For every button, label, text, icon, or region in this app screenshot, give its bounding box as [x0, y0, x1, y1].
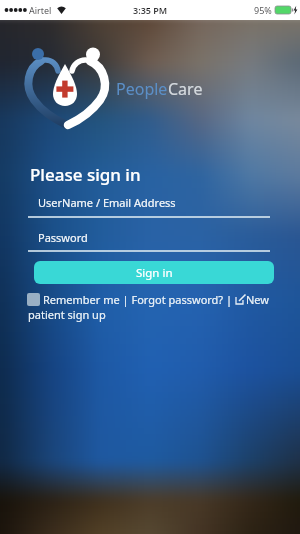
staticText: Sign in [136, 265, 173, 281]
button[interactable]: New [246, 292, 269, 307]
staticText: People [116, 78, 168, 100]
staticText: Care [168, 78, 203, 100]
staticText: 95% [254, 4, 272, 16]
button[interactable]: Sign in [34, 261, 274, 284]
button[interactable] [27, 293, 40, 306]
staticText: Please sign in [30, 163, 141, 186]
staticText: 3:35 PM [133, 4, 168, 16]
button[interactable]: UserName / Email Address [38, 195, 176, 210]
button[interactable]: Password [38, 230, 88, 245]
staticText: Airtel [29, 4, 52, 16]
button[interactable]: patient sign up [28, 307, 106, 322]
button[interactable]: Remember me | Forgot password? | [43, 292, 235, 307]
